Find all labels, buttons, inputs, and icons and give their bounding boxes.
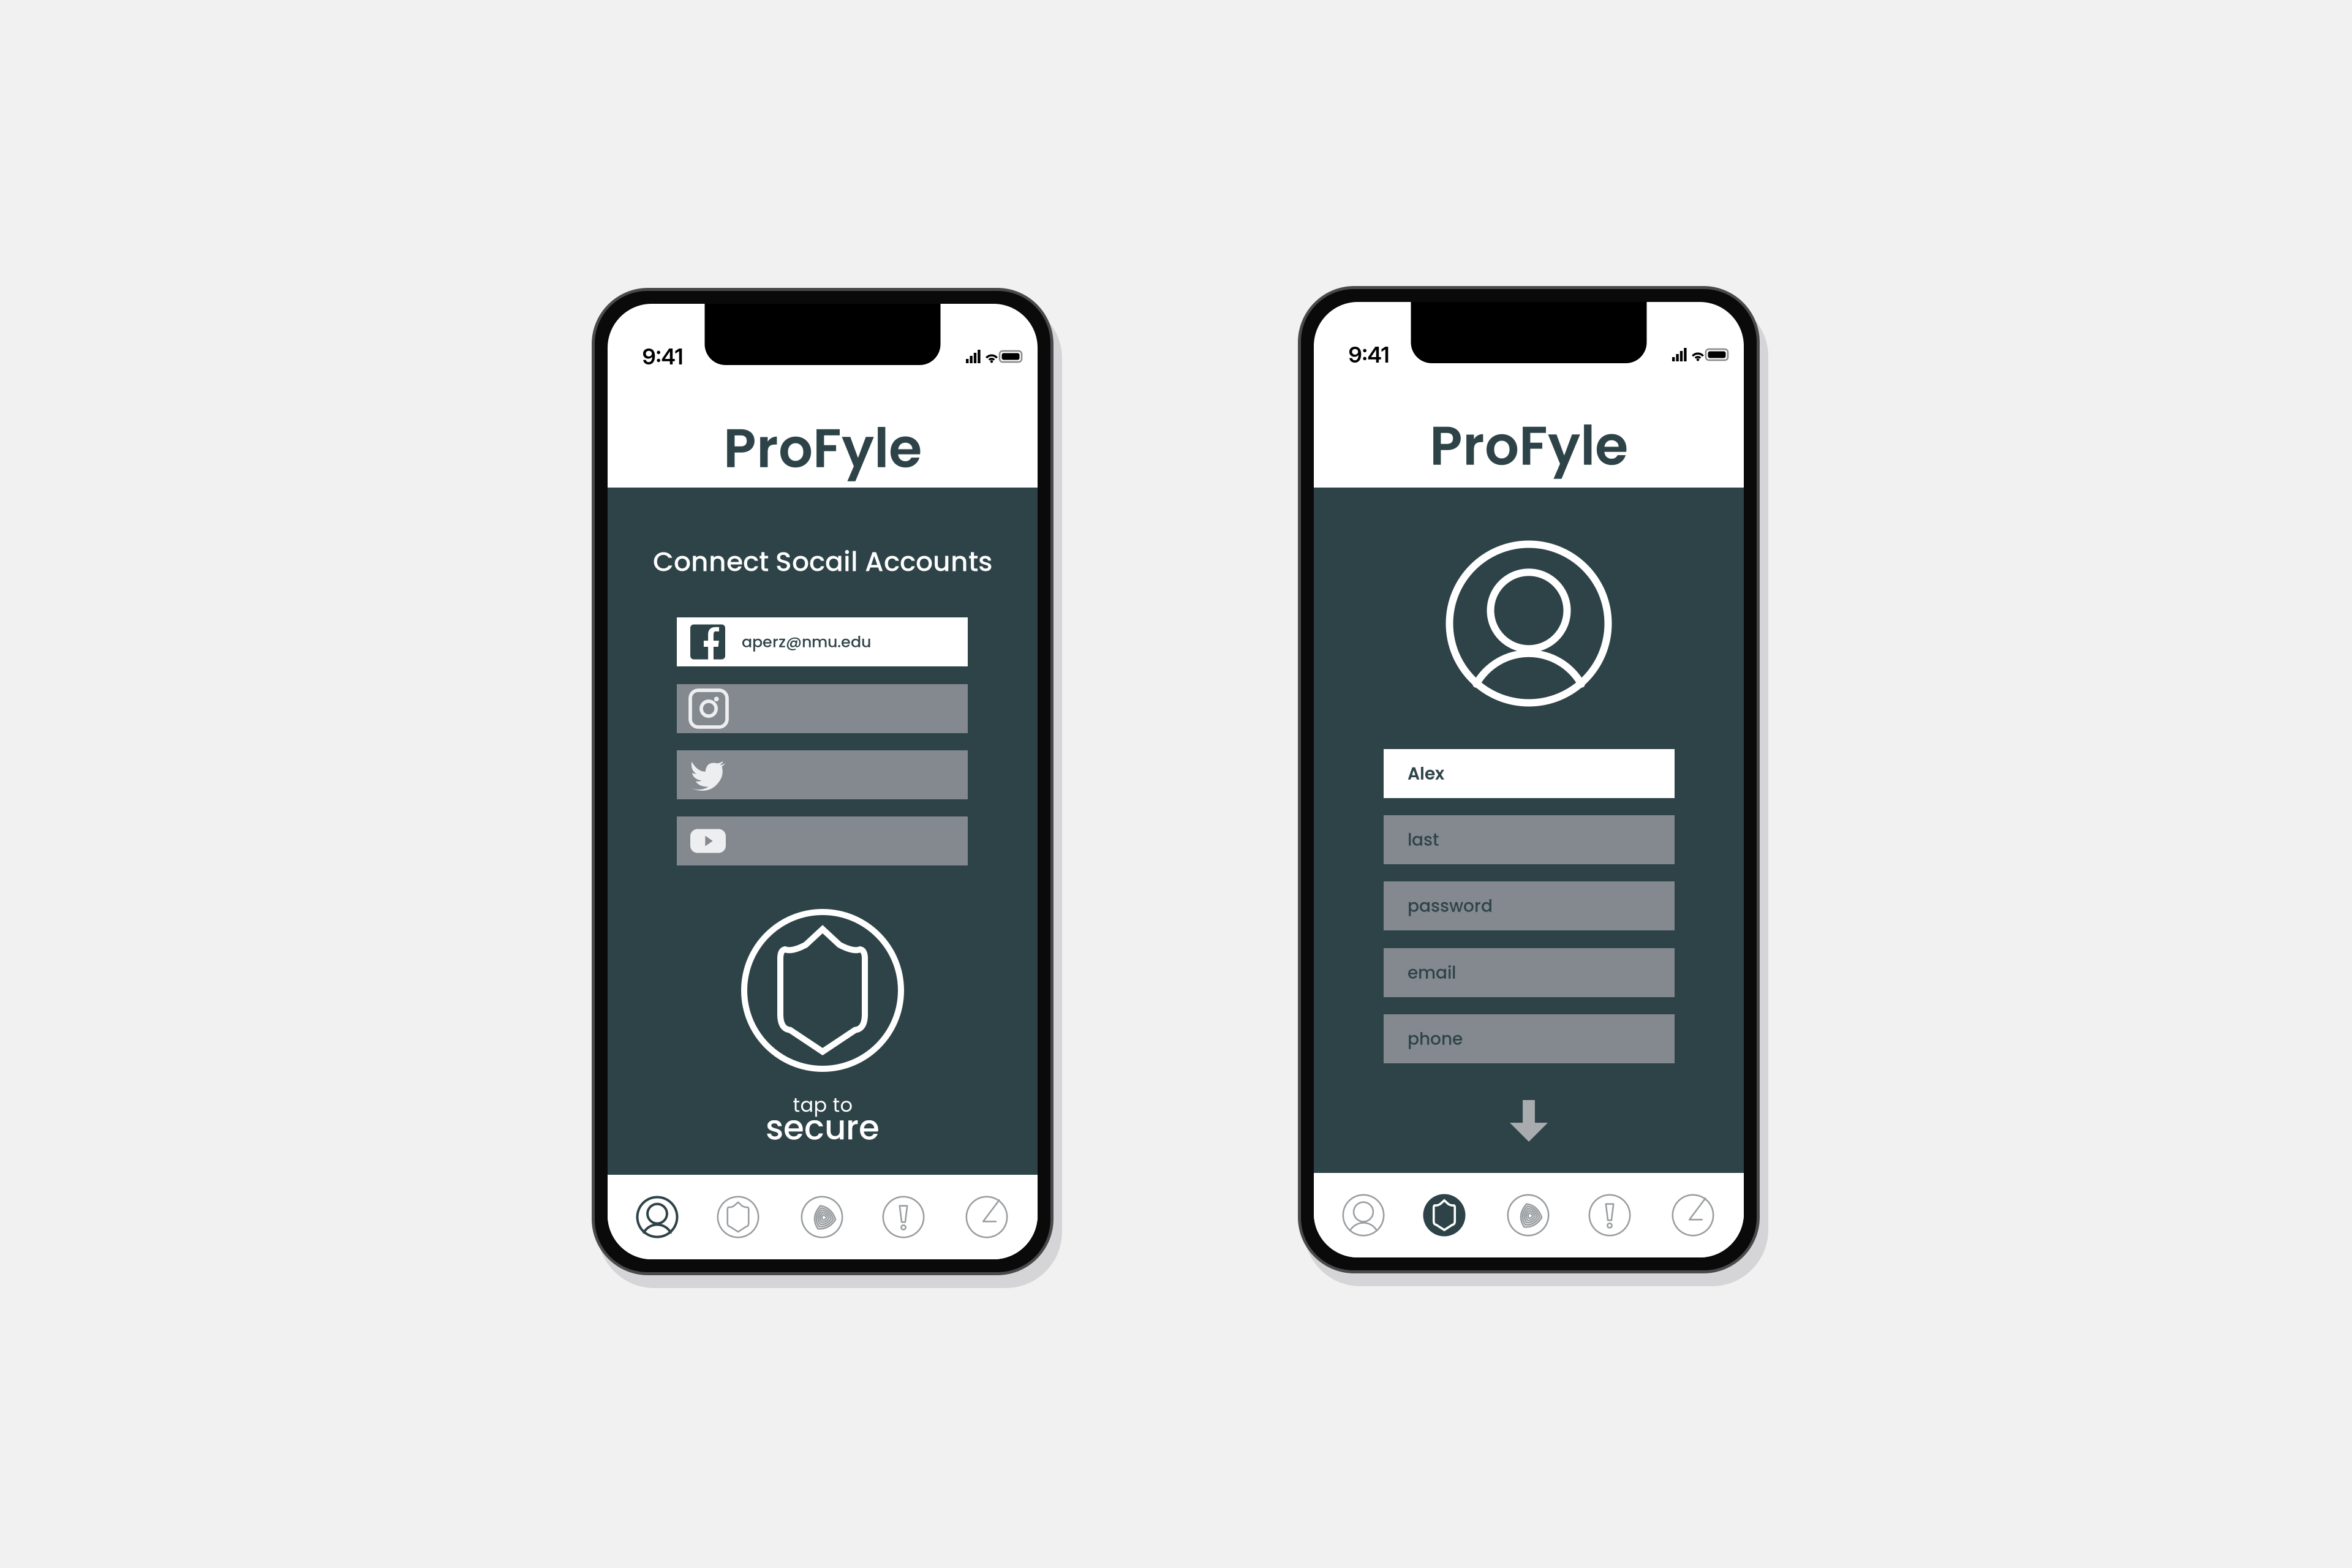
button[interactable]: Tap to secure — [741, 909, 904, 1072]
button[interactable]: email — [1384, 948, 1675, 997]
button[interactable]: Profile — [1327, 1173, 1400, 1257]
button[interactable] — [677, 816, 968, 865]
button[interactable]: aperz@nmu.edu — [677, 617, 968, 666]
button[interactable]: password — [1384, 881, 1675, 930]
staticText: tap to — [793, 1091, 852, 1119]
button[interactable]: Alex — [1384, 749, 1675, 798]
staticText: ProFyle — [723, 411, 922, 486]
staticText: password — [1408, 894, 1493, 918]
button[interactable]: Identity — [1491, 1173, 1565, 1257]
button[interactable]: Alerts — [1573, 1173, 1646, 1257]
staticText: email — [1408, 961, 1456, 985]
staticText: 9:41 — [642, 343, 683, 370]
button[interactable]: Identity — [785, 1175, 859, 1259]
button[interactable]: History — [950, 1175, 1023, 1259]
staticText: secure — [766, 1104, 880, 1151]
staticText: 9:41 — [1348, 341, 1389, 368]
staticText: last — [1408, 828, 1439, 852]
staticText: Connect Socail Accounts — [653, 543, 992, 581]
button[interactable]: Scroll down — [1510, 1100, 1548, 1142]
button[interactable]: Security — [1408, 1173, 1481, 1257]
button[interactable]: History — [1656, 1173, 1730, 1257]
button[interactable] — [677, 684, 968, 733]
staticText: aperz@nmu.edu — [742, 631, 871, 653]
staticText: ProFyle — [1430, 408, 1628, 484]
staticText: Alex — [1408, 762, 1444, 786]
button[interactable]: phone — [1384, 1014, 1675, 1063]
button[interactable]: last — [1384, 815, 1675, 864]
button[interactable]: Alerts — [867, 1175, 940, 1259]
button[interactable]: Security — [701, 1175, 775, 1259]
staticText: phone — [1408, 1027, 1463, 1051]
button[interactable]: Profile — [620, 1175, 694, 1259]
button[interactable] — [677, 750, 968, 799]
